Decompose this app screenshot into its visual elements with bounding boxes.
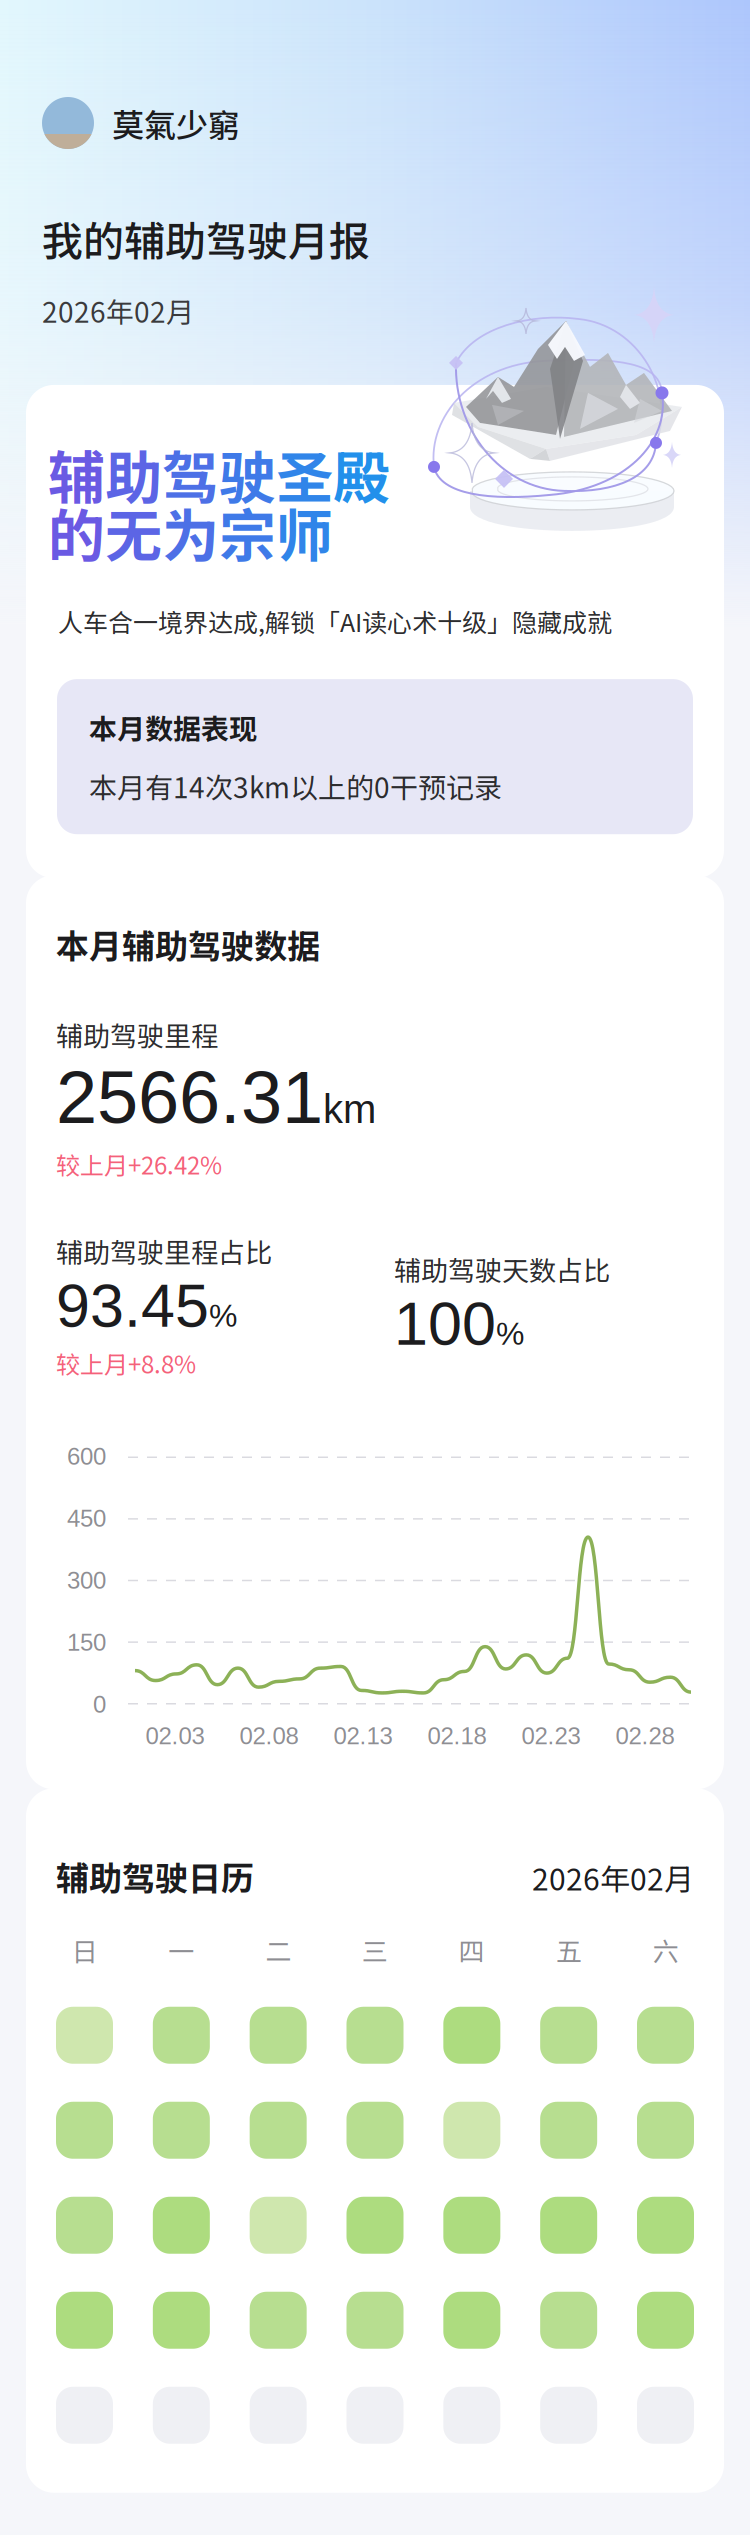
staticText: 驶 (219, 433, 276, 515)
staticText: 我的辅助驾驶月报 (42, 209, 370, 268)
staticText: km (323, 1087, 376, 1132)
staticText: 本月辅助驾驶数据 (56, 920, 320, 968)
staticText: 的 (48, 491, 105, 573)
staticText: 0 (93, 1691, 106, 1718)
staticText: 为 (162, 491, 219, 573)
staticText: 五 (556, 1931, 582, 1969)
staticText: 2026年02月 (532, 1856, 694, 1899)
staticText: 本月数据表现 (89, 707, 257, 748)
staticText: 一 (168, 1931, 194, 1969)
staticText: 殿 (333, 433, 390, 515)
staticText: % (209, 1298, 237, 1334)
staticText: 人车合一境界达成,解锁「AI读心术十级」隐藏成就 (58, 603, 612, 639)
staticText: 六 (652, 1931, 678, 1969)
staticText: 三 (362, 1931, 388, 1969)
staticText: 助 (105, 433, 162, 515)
staticText: 450 (67, 1505, 106, 1532)
button[interactable]: 莫氣少窮 (42, 97, 240, 149)
staticText: 02.23 (521, 1722, 580, 1749)
staticText: 2026年02月 (42, 290, 194, 331)
staticText: 300 (67, 1567, 106, 1594)
staticText: 02.13 (333, 1722, 392, 1749)
staticText: 600 (67, 1443, 106, 1470)
staticText: 辅 (48, 433, 105, 515)
staticText: 02.03 (145, 1722, 204, 1749)
staticText: 圣 (276, 433, 333, 515)
staticText: 辅助驾驶天数占比 (394, 1249, 610, 1289)
staticText: 较上月+8.8% (56, 1346, 196, 1381)
staticText: 宗 (219, 491, 276, 573)
staticText: 02.08 (239, 1722, 298, 1749)
staticText: 02.18 (427, 1722, 486, 1749)
staticText: 师 (276, 491, 333, 573)
staticText: % (496, 1316, 524, 1352)
staticText: 100 (394, 1290, 496, 1358)
staticText: 150 (67, 1629, 106, 1656)
staticText: 辅助驾驶日历 (56, 1852, 254, 1900)
staticText: 辅助驾驶里程占比 (56, 1231, 272, 1271)
staticText: 本月有14次3km以上的0干预记录 (89, 766, 502, 806)
staticText: 无 (105, 491, 162, 573)
staticText: 二 (265, 1931, 291, 1969)
staticText: 02.28 (615, 1722, 674, 1749)
staticText: 莫氣少窮 (112, 100, 240, 146)
staticText: 四 (459, 1931, 485, 1969)
staticText: 辅助驾驶里程 (56, 1015, 218, 1054)
staticText: 93.45 (56, 1272, 209, 1340)
staticText: 驾 (162, 433, 219, 515)
staticText: 日 (71, 1931, 97, 1969)
staticText: 较上月+26.42% (56, 1147, 222, 1182)
staticText: 2566.31 (56, 1056, 323, 1139)
